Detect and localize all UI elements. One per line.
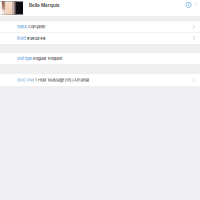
button[interactable]: ticket [0, 33, 200, 44]
button[interactable]: status [0, 21, 200, 32]
staticText: Bella Marquis [29, 2, 59, 8]
staticText: Complete [28, 24, 45, 29]
staticText: #242348 [27, 36, 46, 41]
button[interactable]: Bella Marquis [0, 0, 200, 16]
staticText: status [17, 24, 27, 29]
button[interactable]: visit type [0, 53, 200, 64]
staticText: ticket [17, 36, 26, 41]
staticText [32, 56, 33, 61]
staticText [26, 36, 27, 41]
button[interactable]: 3:00 PM [0, 74, 200, 86]
staticText: Regular Request [33, 56, 62, 61]
staticText: visit type [17, 56, 32, 61]
staticText: 1 Hour Massage (1h) / Amanda [35, 78, 89, 82]
staticText: 3:00 PM [17, 78, 34, 82]
